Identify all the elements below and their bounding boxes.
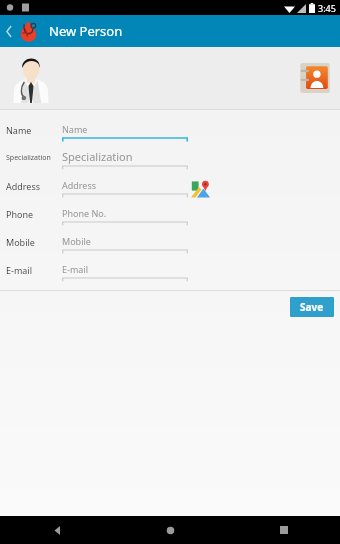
staticText: Save [300, 300, 324, 314]
button[interactable]: Save [290, 297, 334, 317]
button[interactable]: Pick from contacts [298, 61, 332, 95]
staticText: Address [6, 180, 41, 192]
button[interactable]: Recent apps [227, 516, 340, 544]
staticText: New Person [49, 22, 123, 40]
button[interactable]: Open map [190, 178, 212, 200]
button[interactable]: Name [0, 116, 340, 144]
staticText: Name [62, 123, 88, 135]
button[interactable]: Home [114, 516, 227, 544]
button[interactable]: Profile photo [9, 52, 53, 104]
button[interactable]: Address [0, 172, 340, 200]
button[interactable]: Back [0, 516, 114, 544]
button[interactable]: Mobile [0, 228, 340, 256]
button[interactable]: Specialization [0, 144, 340, 172]
staticText: Address [62, 179, 97, 191]
button[interactable]: App logo [16, 18, 42, 44]
staticText: Specialization [62, 149, 133, 164]
staticText: Mobile [62, 235, 91, 247]
button[interactable]: Phone [0, 200, 340, 228]
staticText: Name [6, 124, 32, 136]
staticText: Phone [6, 208, 34, 220]
staticText: 3:45 [318, 2, 336, 14]
button[interactable]: E-mail [0, 256, 340, 284]
staticText: Phone No. [62, 207, 107, 219]
staticText: E-mail [6, 264, 33, 276]
button[interactable]: Back [4, 15, 14, 47]
staticText: Mobile [6, 236, 35, 248]
staticText: E-mail [62, 263, 89, 275]
staticText: Specialization [6, 153, 51, 163]
